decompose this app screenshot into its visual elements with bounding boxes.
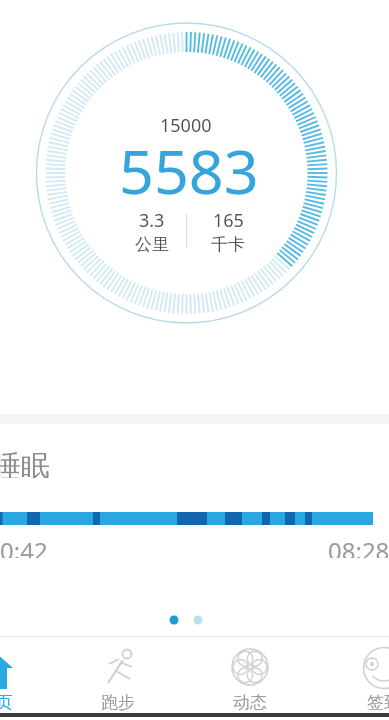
staticText: 公里 — [135, 234, 169, 255]
button[interactable]: 动态 — [195, 643, 305, 714]
button[interactable] — [0, 512, 389, 525]
button[interactable]: 跑步 — [63, 643, 173, 714]
button[interactable]: 首页 — [0, 643, 51, 714]
staticText: 15000 — [160, 113, 212, 135]
button[interactable]: 签到 — [329, 643, 389, 714]
staticText: 签到 — [367, 692, 389, 713]
staticText: 睡眠 — [0, 448, 50, 478]
staticText: 3.3 — [139, 208, 165, 232]
staticText: 千卡 — [211, 234, 245, 255]
staticText: 首页 — [0, 692, 13, 713]
staticText: 165 — [213, 208, 244, 232]
staticText: 跑步 — [101, 692, 135, 713]
staticText: 08:28 — [328, 534, 389, 558]
staticText: 动态 — [233, 692, 267, 713]
staticText: 0:42 — [0, 534, 48, 558]
staticText: 5583 — [119, 129, 259, 199]
